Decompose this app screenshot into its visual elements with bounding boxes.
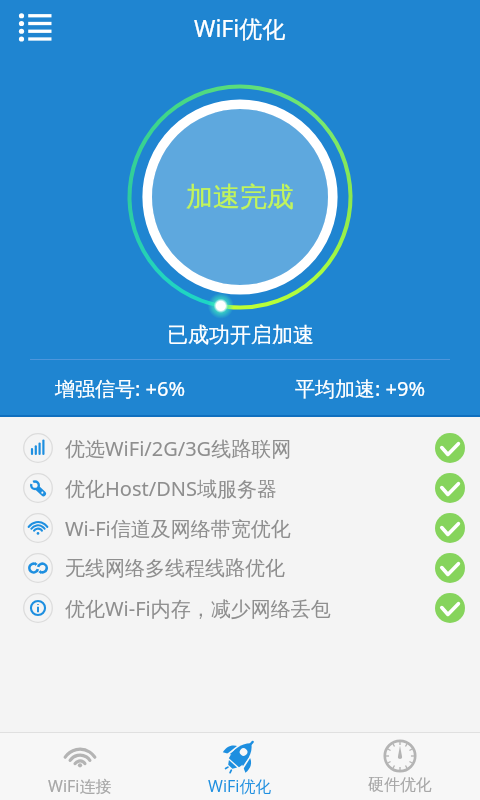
- staticText: WiFi优化: [208, 775, 272, 797]
- button[interactable]: Menu: [14, 10, 60, 50]
- staticText: 加速完成: [186, 180, 294, 214]
- button[interactable]: WiFi连接: [0, 733, 160, 800]
- staticText: 已成功开启加速: [167, 322, 314, 348]
- staticText: Wi-Fi信道及网络带宽优化: [65, 515, 291, 542]
- button[interactable]: 硬件优化: [320, 733, 480, 800]
- staticText: WiFi优化: [194, 12, 286, 43]
- button[interactable]: 无线网络多线程线路优化: [0, 548, 480, 588]
- button[interactable]: 优化Host/DNS域服务器: [0, 468, 480, 508]
- button[interactable]: Wi-Fi信道及网络带宽优化: [0, 508, 480, 548]
- button[interactable]: 优化Wi-Fi内存，减少网络丢包: [0, 588, 480, 628]
- staticText: 增强信号: +6%: [55, 375, 186, 402]
- button[interactable]: 优选WiFi/2G/3G线路联网: [0, 428, 480, 468]
- staticText: 平均加速: +9%: [295, 375, 426, 402]
- staticText: 优化Wi-Fi内存，减少网络丢包: [65, 595, 331, 622]
- button[interactable]: WiFi优化: [160, 733, 320, 800]
- staticText: 优选WiFi/2G/3G线路联网: [65, 435, 292, 462]
- staticText: 硬件优化: [368, 775, 432, 795]
- staticText: 无线网络多线程线路优化: [65, 556, 285, 581]
- staticText: 优化Host/DNS域服务器: [65, 475, 277, 502]
- staticText: WiFi连接: [48, 775, 112, 797]
